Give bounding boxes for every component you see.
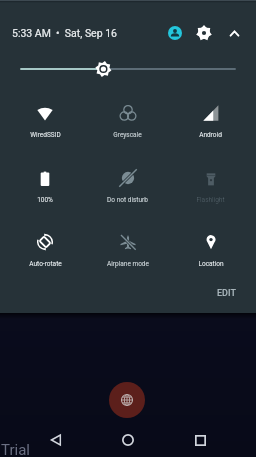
button[interactable]: Recents — [183, 423, 217, 457]
staticText: Trial — [1, 441, 30, 457]
button[interactable]: WiredSSID — [4, 81, 86, 145]
staticText: Do not disturb — [107, 196, 148, 204]
button[interactable]: Brightness — [19, 59, 237, 79]
staticText: Location — [198, 260, 224, 268]
button[interactable]: Do not disturb — [86, 146, 169, 210]
staticText: Greyscale — [113, 131, 142, 139]
staticText: Android — [199, 131, 222, 139]
staticText: Flashlight — [196, 196, 225, 204]
button[interactable]: Auto-rotate — [4, 210, 86, 274]
button[interactable]: Greyscale — [86, 81, 169, 145]
button[interactable]: Location — [169, 210, 252, 274]
button[interactable]: Home — [111, 423, 145, 457]
staticText: EDIT — [217, 288, 236, 299]
button[interactable]: EDIT — [217, 288, 236, 299]
button[interactable]: Back — [39, 423, 73, 457]
button[interactable]: Airplane mode — [86, 210, 169, 274]
staticText: WiredSSID — [30, 131, 61, 139]
button[interactable]: 100% — [4, 146, 86, 210]
staticText: 5:33 AM • Sat, Sep 16 — [12, 27, 117, 39]
staticText: Airplane mode — [107, 260, 149, 268]
staticText: Auto-rotate — [29, 260, 62, 268]
button[interactable]: User — [164, 22, 186, 44]
button[interactable]: Android — [169, 81, 252, 145]
button[interactable]: Flashlight — [169, 146, 252, 210]
button[interactable]: Settings — [193, 22, 215, 44]
button[interactable]: Browser — [109, 382, 145, 418]
staticText: 100% — [37, 196, 53, 204]
button[interactable]: Collapse — [223, 22, 245, 44]
